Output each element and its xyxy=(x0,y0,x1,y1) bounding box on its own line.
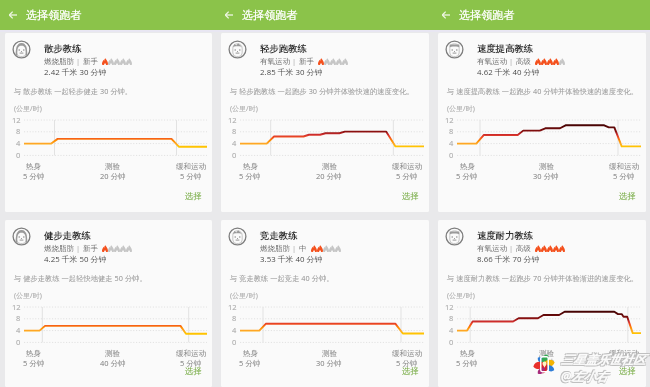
staticText: @左小右 xyxy=(560,369,607,385)
staticText: 速度提高教练 xyxy=(477,43,533,55)
staticText: 测验 xyxy=(105,162,120,171)
staticText: 缓和运动 xyxy=(609,349,639,358)
staticText: 0 xyxy=(232,337,237,347)
staticText: 与 轻步跑教练 一起跑步 30 分钟并体验快速的速度变化。 xyxy=(230,86,414,96)
button[interactable]: Back xyxy=(3,5,23,25)
staticText: | xyxy=(290,243,299,253)
staticText: 4 xyxy=(232,325,237,335)
staticText: 12 xyxy=(445,115,454,125)
staticText: 新手 xyxy=(83,244,98,253)
staticText: 测验 xyxy=(539,349,554,358)
staticText: 20 分钟 xyxy=(316,171,342,181)
button[interactable]: Back xyxy=(436,5,456,25)
staticText: 有氧运动 xyxy=(477,57,507,66)
staticText: | xyxy=(74,243,83,253)
staticText: 5 分钟 xyxy=(456,358,478,368)
staticText: 选择 xyxy=(185,366,202,377)
staticText: 8 xyxy=(232,126,237,136)
button[interactable]: Back xyxy=(219,5,239,25)
staticText: 8 xyxy=(449,313,454,323)
staticText: 0 xyxy=(449,150,454,160)
staticText: 0 xyxy=(232,150,237,160)
staticText: (公里/时) xyxy=(14,104,42,114)
staticText: 测验 xyxy=(539,162,554,171)
button[interactable]: 速度提高教练 xyxy=(438,33,646,212)
staticText: 0 xyxy=(16,337,21,347)
staticText: 新手 xyxy=(83,57,98,66)
staticText: 8 xyxy=(449,126,454,136)
staticText: 20 分钟 xyxy=(100,171,126,181)
button[interactable]: 选择 xyxy=(390,187,429,212)
staticText: 选择领跑者 xyxy=(242,8,298,22)
button[interactable]: 选择 xyxy=(607,362,646,387)
staticText: 高级 xyxy=(516,57,531,66)
staticText: 4.62 千米 40 分钟 xyxy=(477,67,540,78)
staticText: 5 分钟 xyxy=(456,171,478,181)
staticText: 5 分钟 xyxy=(180,358,202,368)
button[interactable]: 健步走教练 xyxy=(5,220,212,387)
staticText: 健步走教练 xyxy=(44,230,91,242)
staticText: 选择领跑者 xyxy=(26,8,82,22)
staticText: 轻步跑教练 xyxy=(260,43,307,55)
staticText: 热身 xyxy=(26,162,41,171)
staticText: 4 xyxy=(232,138,237,148)
button[interactable]: 选择 xyxy=(607,187,646,212)
staticText: (公里/时) xyxy=(14,291,42,301)
staticText: 12 xyxy=(12,115,21,125)
staticText: 分钟 xyxy=(539,358,554,367)
staticText: 与 散步教练 一起轻步健走 30 分钟。 xyxy=(14,86,133,96)
staticText: 3.53 千米 40 分钟 xyxy=(260,254,323,265)
button[interactable]: 选择 xyxy=(390,362,429,387)
staticText: (公里/时) xyxy=(447,104,475,114)
staticText: 4 xyxy=(16,325,21,335)
staticText: 30 分钟 xyxy=(533,171,559,181)
staticText: 测验 xyxy=(322,349,337,358)
staticText: @左小右 xyxy=(561,368,608,384)
staticText: 8 xyxy=(16,313,21,323)
button[interactable]: 散步教练 xyxy=(5,33,212,212)
staticText: 选择领跑者 xyxy=(459,8,515,22)
staticText: 5 分钟 xyxy=(23,171,45,181)
staticText: 5 分钟 xyxy=(396,358,418,368)
button[interactable]: 竞走教练 xyxy=(221,220,429,387)
staticText: @左小右 xyxy=(561,367,608,383)
staticText: 选择 xyxy=(619,191,636,202)
staticText: 热身 xyxy=(460,162,475,171)
staticText: | xyxy=(507,56,516,66)
staticText: 缓和运动 xyxy=(392,162,422,171)
staticText: 三星盖乐世社区 xyxy=(560,353,644,368)
staticText: 5 分钟 xyxy=(23,358,45,368)
button[interactable]: 速度耐力教练 xyxy=(438,220,646,387)
staticText: 12 xyxy=(445,302,454,312)
staticText: 选择 xyxy=(402,366,419,377)
staticText: 与 速度提高教练 一起跑步 40 分钟并体验快速的速度变化。 xyxy=(447,86,639,96)
staticText: 缓和运动 xyxy=(392,349,422,358)
button[interactable]: 选择 xyxy=(173,362,212,387)
staticText: 热身 xyxy=(243,162,258,171)
staticText: 三星盖乐世社区 xyxy=(562,353,646,368)
staticText: 缓和运动 xyxy=(176,349,206,358)
staticText: 40 分钟 xyxy=(100,358,126,368)
staticText: 与 竞走教练 一起竞走 40 分钟。 xyxy=(230,273,334,283)
staticText: 有氧运动 xyxy=(477,244,507,253)
staticText: 与 速度耐力教练 一起跑步 70 分钟并体验渐进的速度变化。 xyxy=(447,273,639,283)
button[interactable]: 轻步跑教练 xyxy=(221,33,429,212)
staticText: (公里/时) xyxy=(447,291,475,301)
staticText: 5 分钟 xyxy=(613,171,635,181)
staticText: 燃烧脂肪 xyxy=(260,244,290,253)
button[interactable]: 选择 xyxy=(173,187,212,212)
staticText: 燃烧脂肪 xyxy=(44,244,74,253)
staticText: 散步教练 xyxy=(44,43,82,55)
staticText: 5 分钟 xyxy=(613,358,635,368)
staticText: 4.25 千米 50 分钟 xyxy=(44,254,107,265)
staticText: | xyxy=(74,56,83,66)
staticText: 2.42 千米 30 分钟 xyxy=(44,67,107,78)
staticText: 热身 xyxy=(243,349,258,358)
staticText: 测验 xyxy=(105,349,120,358)
staticText: 选择 xyxy=(185,191,202,202)
staticText: 5 分钟 xyxy=(239,358,261,368)
staticText: 缓和运动 xyxy=(176,162,206,171)
staticText: 8.66 千米 70 分钟 xyxy=(477,254,540,265)
staticText: 5 分钟 xyxy=(396,171,418,181)
staticText: 与 健步走教练 一起轻快地健走 50 分钟。 xyxy=(14,273,147,283)
